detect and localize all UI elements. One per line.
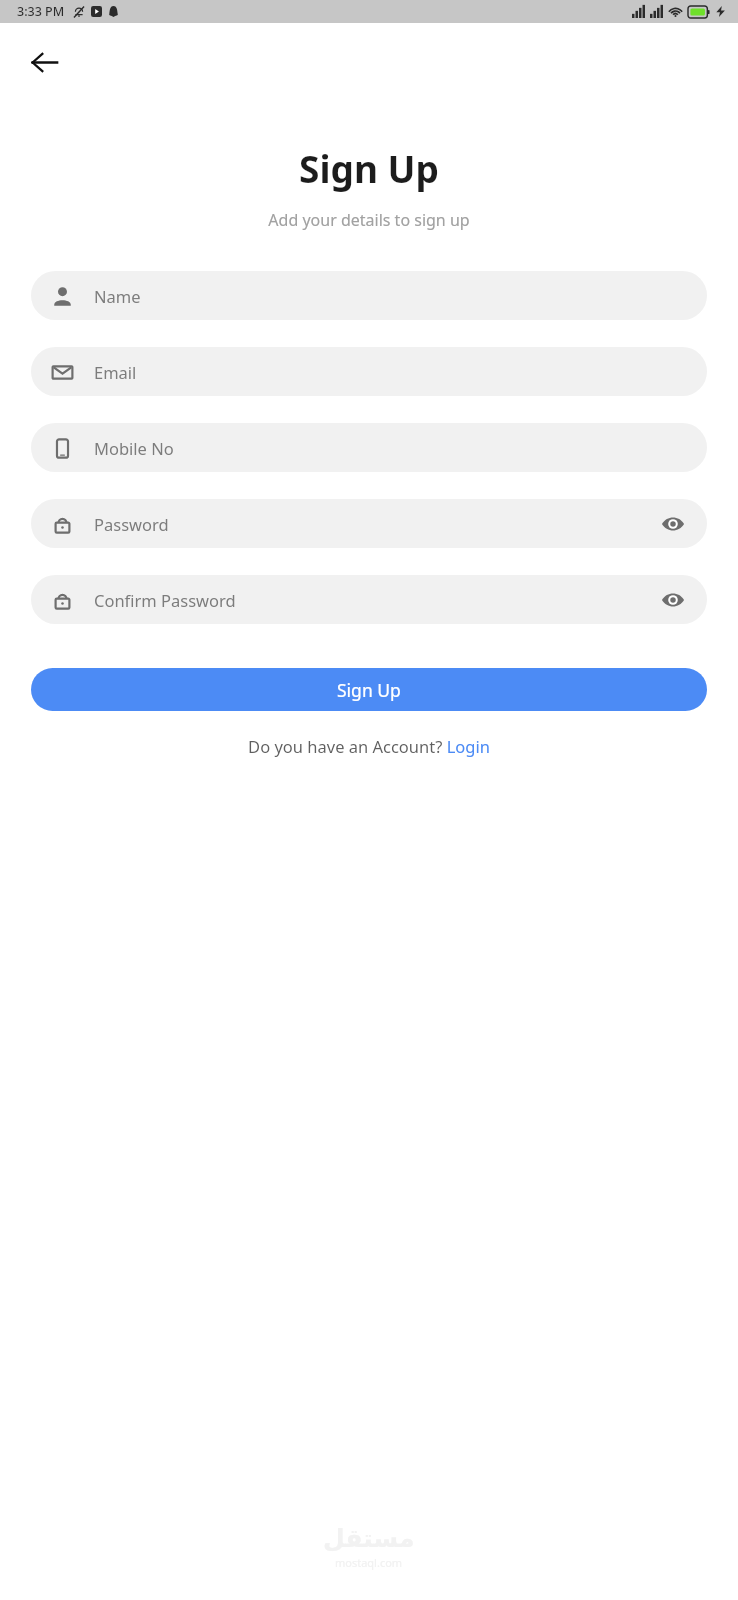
staticText: مستقل xyxy=(323,1524,415,1553)
button[interactable]: Do you have an Account? Login xyxy=(248,735,490,757)
staticText: Confirm Password xyxy=(94,589,236,611)
button[interactable]: Back xyxy=(20,38,68,86)
button[interactable]: Password xyxy=(31,499,707,548)
button[interactable]: Email xyxy=(31,347,707,396)
staticText: Name xyxy=(94,285,141,307)
staticText: 3:33 PM xyxy=(17,3,65,20)
button[interactable]: Toggle password visibility xyxy=(657,584,689,616)
button[interactable]: Sign Up xyxy=(31,668,707,711)
staticText: mostaql.com xyxy=(335,1555,403,1570)
button[interactable]: Name xyxy=(31,271,707,320)
staticText: Sign Up xyxy=(337,678,401,702)
staticText: Password xyxy=(94,513,169,535)
button[interactable]: Confirm Password xyxy=(31,575,707,624)
staticText: Mobile No xyxy=(94,437,174,459)
staticText: Email xyxy=(94,361,137,383)
button[interactable]: Toggle password visibility xyxy=(657,508,689,540)
staticText: Do you have an Account? Login xyxy=(248,735,490,757)
staticText: Sign Up xyxy=(299,143,439,193)
button[interactable]: Mobile No xyxy=(31,423,707,472)
staticText: Add your details to sign up xyxy=(268,209,470,231)
